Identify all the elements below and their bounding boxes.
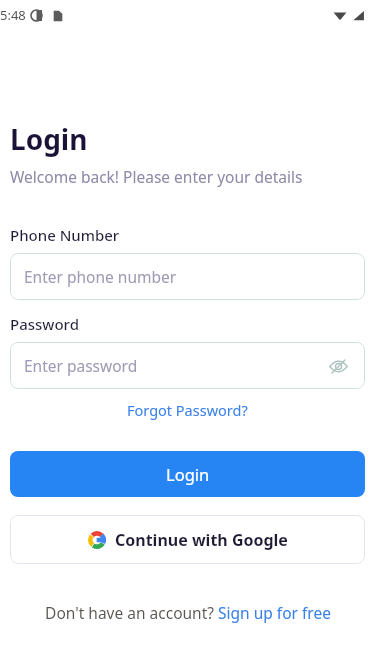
- button[interactable]: Forgot Password?: [121, 398, 254, 422]
- button[interactable]: Continue with Google: [10, 515, 365, 564]
- staticText: Enter phone number: [24, 266, 177, 287]
- button[interactable]: Show password: [325, 353, 351, 379]
- staticText: Welcome back! Please enter your details: [10, 166, 303, 187]
- staticText: Forgot Password?: [127, 400, 248, 420]
- staticText: Login: [166, 463, 210, 485]
- staticText: Login: [10, 120, 88, 158]
- staticText: Password: [10, 314, 79, 334]
- staticText: 5:48: [0, 6, 26, 24]
- staticText: Don't have an account? Sign up for free: [45, 602, 331, 623]
- staticText: Phone Number: [10, 225, 120, 245]
- staticText: Enter password: [24, 355, 138, 376]
- button[interactable]: Don't have an account? Sign up for free: [41, 600, 335, 625]
- staticText: Continue with Google: [115, 529, 288, 551]
- button[interactable]: Enter password: [10, 342, 365, 389]
- button[interactable]: Enter phone number: [10, 253, 365, 300]
- button[interactable]: Login: [10, 451, 365, 497]
